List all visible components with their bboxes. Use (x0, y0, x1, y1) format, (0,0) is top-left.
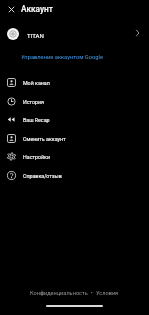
staticText: TITAN (27, 32, 44, 39)
staticText: Мой канал (23, 80, 50, 86)
button[interactable]: Конфиденциальность (30, 290, 88, 297)
staticText: Сменить аккаунт (23, 136, 66, 142)
staticText: Справка/отзыв (23, 173, 62, 179)
staticText: Управление аккаунтом Google (21, 54, 104, 61)
button[interactable]: Справка/отзыв (0, 166, 149, 185)
button[interactable]: История (0, 92, 149, 111)
button[interactable]: TITAN (0, 24, 149, 46)
staticText: Ваш Recap (23, 117, 50, 123)
other: Open account (134, 29, 142, 37)
button[interactable]: Close (2, 0, 20, 18)
button[interactable]: Настройки (0, 147, 149, 166)
staticText: Аккаунт (21, 4, 53, 14)
button[interactable]: Мой канал (0, 73, 149, 92)
staticText: Настройки (23, 154, 50, 160)
staticText: • (88, 290, 96, 297)
button[interactable]: Условия (96, 290, 119, 297)
button[interactable]: Управление аккаунтом Google (21, 54, 104, 61)
staticText: История (23, 99, 44, 105)
button[interactable]: Сменить аккаунт (0, 129, 149, 148)
button[interactable]: Ваш Recap (0, 110, 149, 129)
